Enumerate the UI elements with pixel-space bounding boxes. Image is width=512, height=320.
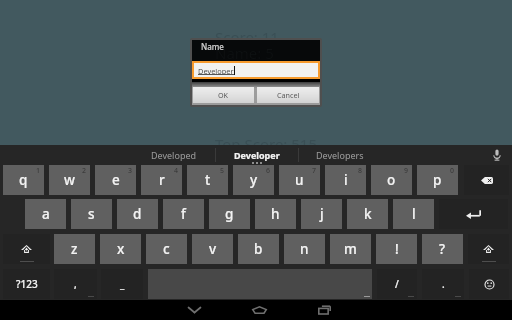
staticText: e [112,171,120,189]
button[interactable]: a [25,199,66,229]
staticText: o [387,171,396,189]
button[interactable]: u [279,165,320,195]
button[interactable]: Back [174,300,214,320]
button[interactable]: s [71,199,112,229]
button[interactable]: y [233,165,274,195]
staticText: 1 [36,166,41,176]
button[interactable]: ? [422,234,463,264]
staticText: 2 [82,166,87,176]
staticText: Name: 5 [215,43,274,63]
button[interactable]: c [146,234,187,264]
staticText: s [88,205,95,223]
button[interactable]: Recents [304,300,344,320]
staticText: x [117,240,125,258]
staticText: ?123 [16,277,38,291]
staticText: Score: 11 [215,27,279,47]
staticText: a [42,205,50,223]
staticText: v [209,240,217,258]
button[interactable]: j [301,199,342,229]
staticText: z [71,240,78,258]
button[interactable]: r [141,165,182,195]
button[interactable]: g [209,199,250,229]
button[interactable]: Developers [299,145,381,165]
staticText: Developed [151,149,197,161]
button[interactable]: t [187,165,228,195]
button[interactable]: , [54,269,97,299]
staticText: p [433,171,442,189]
button[interactable]: x [100,234,141,264]
button[interactable]: Cancel [257,87,319,103]
button[interactable]: v [192,234,233,264]
button[interactable]: z [54,234,95,264]
button[interactable]: Backspace [464,165,509,195]
button[interactable]: q [3,165,44,195]
button[interactable]: Developer [216,145,298,165]
button[interactable]: p [417,165,458,195]
button[interactable]: Home [239,300,279,320]
staticText: 0 [450,166,455,176]
staticText: y [250,171,258,189]
staticText: OK [218,90,229,100]
staticText: i [344,171,348,189]
staticText: 9 [404,166,409,176]
button[interactable]: b [238,234,279,264]
button[interactable]: Shift [468,234,509,264]
button[interactable]: _ [101,269,143,299]
staticText: Cancel [277,90,300,100]
staticText: t [205,171,211,189]
button[interactable]: Emoji [469,269,509,299]
button[interactable]: Voice input [482,145,512,165]
staticText: d [133,205,142,223]
button[interactable]: k [347,199,388,229]
button[interactable]: . [422,269,464,299]
staticText: l [412,205,416,223]
staticText: 6 [266,166,271,176]
button[interactable]: ?123 [3,269,50,299]
staticText: k [364,205,372,223]
button[interactable]: e [95,165,136,195]
button[interactable]: Enter [439,199,508,229]
button[interactable]: n [284,234,325,264]
staticText: j [320,205,324,223]
staticText: f [181,205,186,223]
button[interactable]: d [117,199,158,229]
staticText: r [159,171,165,189]
button[interactable]: o [371,165,412,195]
staticText: Developer [198,66,234,74]
staticText: 4 [174,166,179,176]
staticText: h [271,205,280,223]
staticText: Developers [316,149,364,161]
staticText: 8 [358,166,363,176]
button[interactable]: Developed [133,145,215,165]
staticText: / [395,277,399,291]
staticText: ! [395,240,399,258]
staticText: 5 [220,166,225,176]
staticText: g [225,205,234,223]
button[interactable]: f [163,199,204,229]
staticText: Developer [234,149,280,161]
staticText: n [300,240,309,258]
button[interactable]: OK [193,87,254,103]
button[interactable]: l [393,199,434,229]
button[interactable]: i [325,165,366,195]
staticText: q [19,171,28,189]
staticText: Name [201,41,224,52]
staticText: , [74,277,77,291]
staticText: 7 [312,166,317,176]
button[interactable]: / [377,269,417,299]
staticText: Name: 5 [215,42,274,62]
staticText: Top Score: 515 [215,134,318,154]
staticText: u [295,171,304,189]
staticText: _ [120,277,125,291]
button[interactable]: m [330,234,371,264]
button[interactable]: w [49,165,90,195]
button[interactable]: h [255,199,296,229]
staticText: c [163,240,170,258]
staticText: b [254,240,263,258]
button[interactable]: ! [376,234,417,264]
staticText: ? [439,240,446,258]
staticText: w [64,171,75,189]
staticText: . [442,277,445,291]
button[interactable]: Shift [3,234,50,264]
